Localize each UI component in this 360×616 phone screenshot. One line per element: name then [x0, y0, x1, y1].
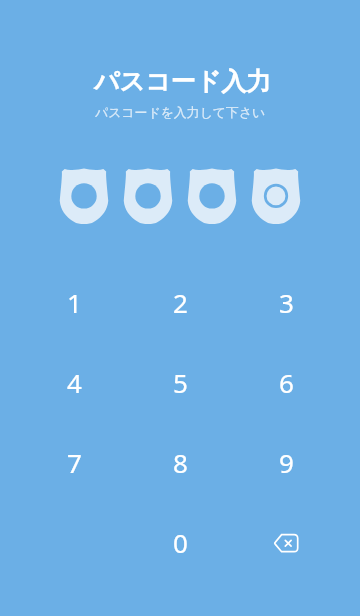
- button[interactable]: 3: [233, 262, 339, 342]
- staticText: 1: [67, 285, 82, 320]
- other: Delete: [271, 530, 301, 554]
- button[interactable]: 1: [22, 262, 127, 342]
- staticText: 3: [279, 285, 294, 320]
- staticText: 8: [173, 445, 188, 480]
- button[interactable]: 4: [22, 342, 127, 422]
- button[interactable]: 2: [127, 262, 233, 342]
- staticText: 2: [173, 285, 188, 320]
- staticText: 0: [173, 525, 188, 560]
- staticText: 5: [173, 365, 188, 400]
- button[interactable]: 6: [233, 342, 339, 422]
- button[interactable]: 8: [127, 422, 233, 502]
- staticText: 7: [67, 445, 82, 480]
- staticText: パスコードを入力して下さい: [95, 105, 266, 121]
- button[interactable]: Delete: [233, 502, 339, 582]
- staticText: 6: [279, 365, 294, 400]
- staticText: 4: [67, 365, 82, 400]
- button[interactable]: 7: [22, 422, 127, 502]
- button[interactable]: 9: [233, 422, 339, 502]
- button[interactable]: 0: [127, 502, 233, 582]
- button[interactable]: 5: [127, 342, 233, 422]
- staticText: 9: [279, 445, 294, 480]
- staticText: パスコード入力: [94, 66, 272, 97]
